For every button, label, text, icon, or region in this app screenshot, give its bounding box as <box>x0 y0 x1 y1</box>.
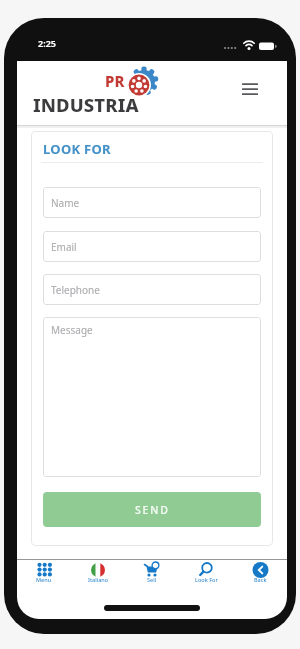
button[interactable]: Name <box>43 187 261 218</box>
staticText: Name <box>51 196 80 210</box>
staticText: Message <box>51 323 93 337</box>
button[interactable]: SEND <box>43 492 261 527</box>
staticText: Telephone <box>51 283 100 297</box>
staticText: Menu <box>36 576 52 583</box>
button[interactable]: Italiano <box>71 560 125 586</box>
staticText: 2:25 <box>38 37 56 49</box>
staticText: SEND <box>135 503 170 517</box>
staticText: Look For <box>195 576 218 583</box>
button[interactable]: Menu <box>17 560 71 586</box>
button[interactable]: Look For <box>179 560 233 586</box>
button[interactable]: Email <box>43 231 261 262</box>
button[interactable]: Back <box>233 560 287 586</box>
staticText: Sell <box>147 576 157 583</box>
button[interactable]: Message <box>43 317 261 477</box>
button[interactable] <box>237 77 263 101</box>
staticText: Email <box>51 240 77 254</box>
staticText: LOOK FOR <box>43 140 111 158</box>
button[interactable]: Sell <box>125 560 179 586</box>
staticText: INDUSTRIA <box>33 92 139 117</box>
staticText: PR <box>105 71 125 91</box>
staticText: Italiano <box>88 576 109 583</box>
button[interactable]: Telephone <box>43 274 261 305</box>
staticText: Back <box>254 576 267 583</box>
